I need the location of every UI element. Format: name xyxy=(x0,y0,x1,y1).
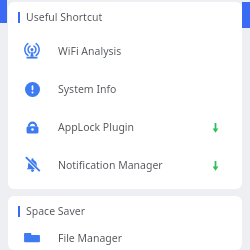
staticText: Notification Manager xyxy=(58,158,163,172)
button[interactable]: WiFi Analysis xyxy=(8,32,242,70)
button[interactable]: Useful Shortcut xyxy=(8,2,242,32)
button[interactable]: Space Saver xyxy=(8,196,242,226)
other: Download xyxy=(208,158,222,172)
other: Download xyxy=(208,120,222,134)
staticText: WiFi Analysis xyxy=(58,44,122,58)
staticText: Space Saver xyxy=(26,204,86,218)
staticText: Useful Shortcut xyxy=(26,10,103,24)
button[interactable]: AppLock Plugin xyxy=(8,108,242,146)
button[interactable]: System Info xyxy=(8,70,242,108)
button[interactable]: Notification Manager xyxy=(8,146,242,184)
staticText: AppLock Plugin xyxy=(58,120,135,134)
staticText: File Manager xyxy=(58,231,123,245)
button[interactable]: File Manager xyxy=(8,226,242,250)
staticText: System Info xyxy=(58,82,117,96)
